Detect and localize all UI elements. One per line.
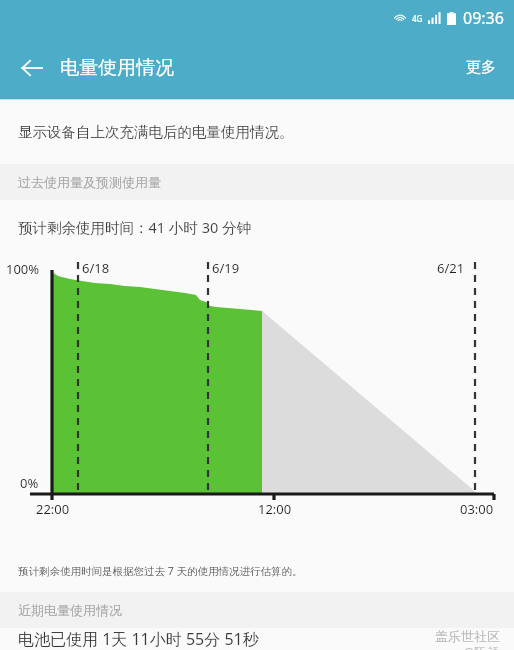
staticText: 盖乐世社区 bbox=[435, 628, 500, 644]
staticText: 更多 bbox=[466, 58, 496, 77]
button[interactable]: 更多 bbox=[456, 48, 506, 87]
staticText: 09:36 bbox=[463, 7, 504, 29]
staticText: 显示设备自上次充满电后的电量使用情况。 bbox=[18, 123, 294, 141]
staticText: 22:00 bbox=[36, 500, 70, 518]
staticText: 6/18 bbox=[82, 259, 110, 277]
staticText: 4G bbox=[412, 13, 423, 24]
staticText: 03:00 bbox=[460, 500, 494, 518]
staticText: 近期电量使用情况 bbox=[18, 602, 122, 618]
staticText: 6/21 bbox=[437, 259, 465, 277]
staticText: 电量使用情况 bbox=[60, 56, 174, 80]
staticText: 12:00 bbox=[258, 500, 292, 518]
staticText: 预计剩余使用时间是根据您过去 7 天的使用情况进行估算的。 bbox=[18, 564, 303, 578]
staticText: 过去使用量及预测使用量 bbox=[18, 174, 161, 190]
button[interactable]: Back bbox=[10, 46, 54, 90]
staticText: 预计剩余使用时间：41 小时 30 分钟 bbox=[18, 217, 251, 237]
staticText: 100% bbox=[6, 260, 40, 278]
staticText: 6/19 bbox=[212, 259, 240, 277]
staticText: 0% bbox=[20, 474, 39, 492]
staticText: 电池已使用 1天 11小时 55分 51秒 bbox=[18, 628, 259, 650]
staticText: @陌-語 bbox=[464, 644, 500, 650]
